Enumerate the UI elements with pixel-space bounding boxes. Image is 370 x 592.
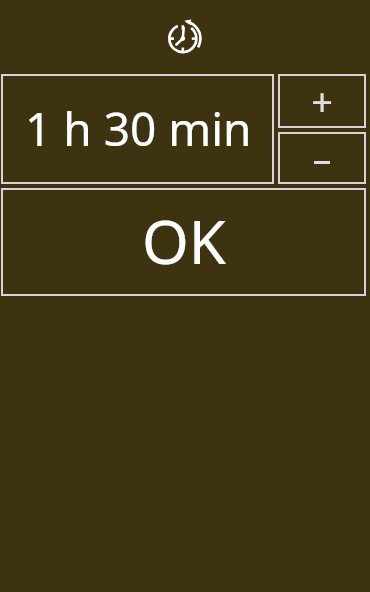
button[interactable]: Decrease: [278, 132, 366, 184]
button[interactable]: 1 h 30 min: [1, 74, 274, 184]
button[interactable]: Timer: [166, 18, 204, 56]
button[interactable]: OK: [1, 188, 366, 296]
staticText: –: [312, 132, 332, 184]
staticText: OK: [142, 200, 226, 282]
staticText: 1 h 30 min: [25, 97, 252, 160]
staticText: +: [311, 75, 333, 127]
button[interactable]: Increase: [278, 74, 366, 128]
